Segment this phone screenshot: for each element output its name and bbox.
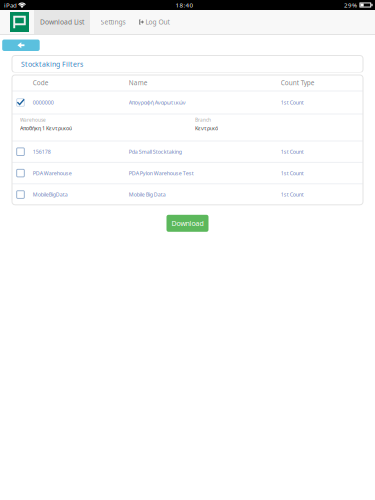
staticText: 18:40 [175,1,193,9]
staticText: 1st Count [281,148,304,155]
button[interactable]: MobileBigData [12,184,363,205]
staticText: Pda Small Stocktaking [129,148,182,155]
staticText: 156178 [33,148,51,155]
staticText: Code [33,78,49,87]
staticText: Branch [195,116,211,123]
staticText: PDA Warehouse [33,169,72,177]
staticText: 1st Count [281,99,304,106]
staticText: Download List [40,17,84,27]
button[interactable]: PDA Warehouse [12,163,363,183]
staticText: Name [129,78,148,87]
staticText: Warehouse [20,116,46,123]
staticText: 29% [344,1,357,9]
staticText: Αποθήκη 1 Κεντρικού [20,124,72,132]
button[interactable]: Home [0,12,34,32]
button[interactable]: Download List [34,10,90,34]
staticText: Κεντρικό [195,124,218,132]
button[interactable]: 156178 [12,141,363,162]
button[interactable]: 0000000 [12,91,363,113]
staticText: 1st Count [281,191,304,198]
staticText: Settings [100,17,125,27]
staticText: 1st Count [281,169,304,177]
staticText: Απογραφή Αναρωτικών [129,99,186,106]
staticText: Download [171,219,203,228]
button[interactable]: Settings [96,10,130,34]
button[interactable]: Download [166,215,208,232]
button[interactable]: Back [2,39,40,51]
staticText: Log Out [145,17,169,27]
button[interactable]: Log Out [139,10,169,34]
staticText: MobileBigData [33,191,68,198]
staticText: Stocktaking Filters [21,59,83,69]
staticText: PDA Pylon Warehouse Test [129,169,194,177]
staticText: 0000000 [33,99,54,106]
staticText: iPad [4,1,17,9]
staticText: Mobile Big Data [129,191,166,198]
staticText: Count Type [281,78,315,87]
